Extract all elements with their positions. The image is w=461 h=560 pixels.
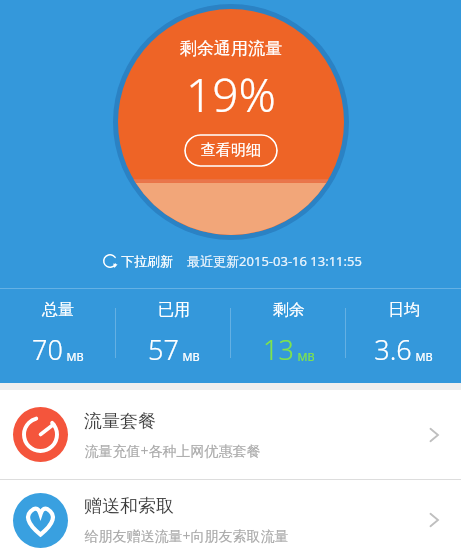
staticText: 流量套餐 (84, 410, 156, 433)
staticText: 13 (263, 331, 294, 368)
button[interactable]: 剩余 (231, 289, 346, 377)
staticText: 给朋友赠送流量+向朋友索取流量 (84, 526, 289, 545)
staticText: 最近更新2015-03-16 13:11:55 (187, 252, 362, 270)
button[interactable]: 日均 (346, 289, 461, 377)
staticText: 赠送和索取 (84, 495, 174, 518)
staticText: MB (182, 349, 200, 364)
staticText: MB (66, 349, 84, 364)
button[interactable]: 总量 (0, 289, 116, 377)
staticText: 3.6 (374, 331, 412, 368)
button[interactable]: 流量套餐 (0, 390, 461, 479)
staticText: 19% (186, 63, 276, 126)
button[interactable]: 已用 (116, 289, 231, 377)
staticText: 日均 (388, 300, 420, 320)
button[interactable]: 查看明细 (184, 134, 278, 167)
other: Refresh (102, 253, 118, 269)
staticText: 剩余 (273, 300, 305, 320)
button[interactable]: Refresh (100, 251, 175, 271)
staticText: 剩余通用流量 (180, 38, 282, 59)
staticText: 已用 (158, 300, 190, 320)
staticText: 57 (148, 331, 179, 368)
staticText: MB (297, 349, 315, 364)
staticText: 70 (32, 331, 63, 368)
button[interactable]: 赠送和索取 (0, 480, 461, 560)
staticText: 查看明细 (201, 141, 261, 160)
staticText: 总量 (42, 300, 74, 320)
staticText: MB (415, 349, 433, 364)
staticText: 流量充值+各种上网优惠套餐 (84, 441, 261, 460)
other: Open 赠送和索取 (423, 509, 445, 531)
staticText: 下拉刷新 (121, 253, 173, 269)
other: Open 流量套餐 (423, 424, 445, 446)
